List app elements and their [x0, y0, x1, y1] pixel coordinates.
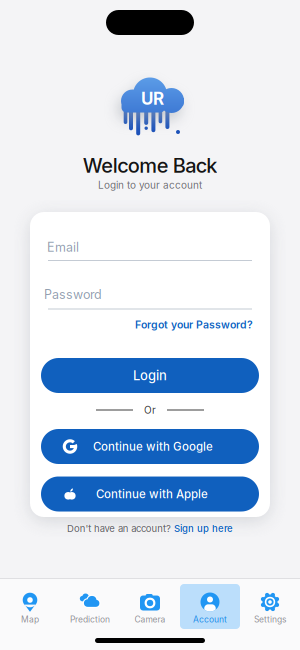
button[interactable]: Account: [180, 578, 240, 650]
button[interactable]: Camera: [120, 578, 180, 650]
staticText: Camera: [134, 614, 165, 625]
staticText: Map: [21, 614, 39, 625]
staticText: Welcome Back: [83, 153, 217, 178]
button[interactable]: Email: [30, 226, 270, 268]
staticText: Sign up here: [174, 523, 233, 534]
button[interactable]: Forgot your Password?: [135, 318, 253, 331]
staticText: Forgot your Password?: [135, 318, 253, 331]
staticText: UR: [141, 88, 164, 109]
staticText: Login to your account: [98, 179, 202, 191]
staticText: Login: [133, 368, 167, 383]
staticText: Continue with Google: [93, 439, 213, 453]
button[interactable]: Continue with Apple: [41, 476, 259, 511]
button[interactable]: Map: [0, 578, 60, 650]
staticText: Password: [44, 287, 102, 302]
button[interactable]: Settings: [240, 578, 300, 650]
button[interactable]: Login: [41, 358, 259, 393]
button[interactable]: Continue with Google: [41, 429, 259, 464]
button[interactable]: Don't have an account?: [67, 523, 233, 534]
staticText: Don't have an account?: [67, 523, 171, 534]
staticText: Prediction: [70, 614, 110, 625]
staticText: Email: [47, 240, 79, 255]
staticText: Continue with Apple: [96, 487, 208, 501]
staticText: Settings: [254, 614, 286, 625]
button[interactable]: Password: [30, 273, 270, 315]
button[interactable]: Prediction: [60, 578, 120, 650]
staticText: Or: [144, 404, 156, 416]
staticText: Account: [193, 614, 227, 625]
